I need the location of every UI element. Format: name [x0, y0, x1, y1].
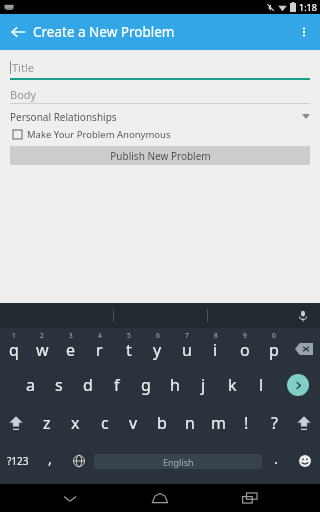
staticText: .: [274, 449, 278, 468]
staticText: g: [141, 374, 151, 396]
button[interactable]: Voice input: [294, 307, 312, 325]
button[interactable]: ?: [260, 404, 288, 442]
staticText: Publish New Problem: [110, 149, 211, 163]
staticText: p: [269, 339, 279, 361]
staticText: s: [55, 374, 63, 396]
button[interactable]: ,: [36, 442, 64, 480]
button[interactable]: Recent apps: [230, 484, 270, 512]
button[interactable]: English: [94, 454, 262, 469]
staticText: n: [185, 412, 195, 434]
button[interactable]: Make Your Problem Anonymous: [10, 127, 310, 142]
button[interactable]: f: [102, 366, 131, 404]
button[interactable]: z: [32, 404, 61, 442]
staticText: r: [96, 339, 103, 361]
button[interactable]: l: [247, 366, 276, 404]
button[interactable]: 3: [56, 328, 85, 366]
staticText: o: [240, 339, 250, 361]
button[interactable]: Publish New Problem: [10, 146, 310, 165]
button[interactable]: n: [176, 404, 204, 442]
staticText: 1:18: [299, 1, 317, 13]
staticText: z: [43, 412, 51, 434]
button[interactable]: Shift: [288, 404, 320, 442]
button[interactable]: Personal Relationships: [10, 109, 310, 124]
staticText: d: [83, 374, 93, 396]
staticText: Personal Relationships: [10, 110, 117, 124]
button[interactable]: Body: [10, 86, 310, 103]
staticText: 5: [127, 331, 131, 340]
staticText: 1: [12, 331, 16, 340]
button[interactable]: a: [16, 366, 44, 404]
button[interactable]: j: [189, 366, 218, 404]
staticText: Make Your Problem Anonymous: [27, 128, 171, 141]
button[interactable]: 0: [259, 328, 288, 366]
button[interactable]: x: [61, 404, 90, 442]
staticText: a: [26, 374, 35, 396]
button[interactable]: 2: [28, 328, 56, 366]
button[interactable]: Shift: [0, 404, 32, 442]
staticText: t: [126, 339, 132, 361]
staticText: Body: [10, 87, 37, 102]
staticText: 6: [156, 331, 160, 340]
button[interactable]: !: [232, 404, 260, 442]
staticText: j: [201, 374, 206, 396]
staticText: u: [182, 339, 192, 361]
button[interactable]: v: [119, 404, 148, 442]
staticText: 9: [243, 331, 247, 340]
button[interactable]: Home: [140, 484, 180, 512]
staticText: q: [9, 339, 19, 361]
staticText: 0: [272, 331, 276, 340]
button[interactable]: More options: [290, 18, 318, 46]
button[interactable]: d: [73, 366, 102, 404]
staticText: 4: [98, 331, 102, 340]
button[interactable]: 8: [201, 328, 230, 366]
staticText: f: [114, 374, 120, 396]
staticText: 7: [185, 331, 189, 340]
button[interactable]: 7: [172, 328, 201, 366]
staticText: English: [163, 456, 194, 468]
button[interactable]: s: [44, 366, 73, 404]
staticText: e: [66, 339, 76, 361]
staticText: i: [213, 339, 218, 361]
button[interactable]: 6: [143, 328, 172, 366]
staticText: k: [228, 374, 237, 396]
staticText: v: [129, 412, 138, 434]
button[interactable]: Change language: [64, 442, 94, 480]
staticText: ?123: [7, 454, 29, 468]
button[interactable]: 5: [114, 328, 143, 366]
staticText: y: [153, 339, 162, 361]
staticText: c: [101, 412, 109, 434]
button[interactable]: k: [218, 366, 247, 404]
button[interactable]: ?123: [0, 442, 36, 480]
button[interactable]: c: [90, 404, 119, 442]
staticText: 2: [40, 331, 44, 340]
button[interactable]: b: [148, 404, 176, 442]
staticText: x: [71, 412, 80, 434]
button[interactable]: h: [160, 366, 189, 404]
staticText: b: [157, 412, 167, 434]
staticText: 3: [69, 331, 73, 340]
button[interactable]: Emoji: [290, 442, 320, 480]
button[interactable]: .: [262, 442, 290, 480]
staticText: 8: [214, 331, 218, 340]
button[interactable]: m: [204, 404, 232, 442]
staticText: Create a New Problem: [33, 23, 175, 41]
button[interactable]: Back: [4, 18, 32, 46]
staticText: l: [259, 374, 264, 396]
staticText: Title: [12, 60, 34, 75]
button[interactable]: g: [131, 366, 160, 404]
button[interactable]: Enter: [276, 366, 320, 404]
staticText: m: [211, 412, 226, 434]
button[interactable]: Hide keyboard: [50, 484, 90, 512]
staticText: ,: [48, 449, 52, 468]
button[interactable]: 1: [0, 328, 28, 366]
staticText: h: [170, 374, 180, 396]
staticText: !: [244, 412, 249, 434]
button[interactable]: Delete: [288, 328, 320, 366]
staticText: ?: [271, 412, 278, 434]
button[interactable]: 9: [230, 328, 259, 366]
staticText: w: [36, 339, 49, 361]
button[interactable]: Title: [10, 56, 310, 78]
button[interactable]: 4: [85, 328, 114, 366]
